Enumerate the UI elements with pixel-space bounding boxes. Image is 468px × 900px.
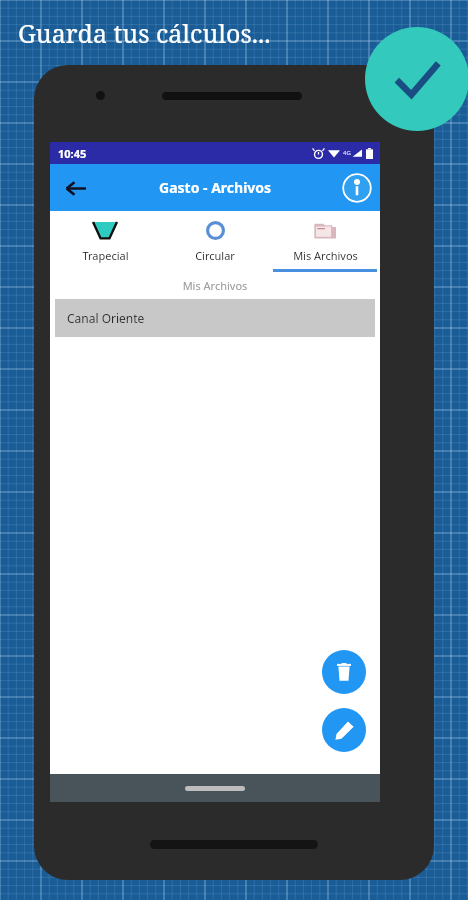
button[interactable]: Circular — [160, 211, 270, 269]
staticText: 4G — [343, 149, 351, 157]
staticText: Mis Archivos — [293, 248, 358, 263]
staticText: Gasto - Archivos — [159, 178, 272, 197]
staticText: 10:45 — [58, 146, 87, 161]
button[interactable]: Info — [342, 173, 372, 203]
staticText: Guarda tus cálculos... — [18, 16, 271, 50]
staticText: Mis Archivos — [50, 278, 380, 293]
staticText: Circular — [195, 248, 235, 263]
button[interactable]: Back — [58, 171, 92, 205]
button[interactable]: Mis Archivos — [270, 211, 380, 269]
staticText: Canal Oriente — [67, 310, 145, 326]
button[interactable]: Delete — [322, 650, 366, 694]
staticText: Trapecial — [82, 248, 129, 263]
button[interactable]: Canal Oriente — [55, 299, 375, 337]
button[interactable]: Trapecial — [50, 211, 160, 269]
button[interactable]: Saved — [365, 27, 468, 131]
button[interactable]: Home — [185, 786, 245, 791]
button[interactable]: Edit — [322, 708, 366, 752]
